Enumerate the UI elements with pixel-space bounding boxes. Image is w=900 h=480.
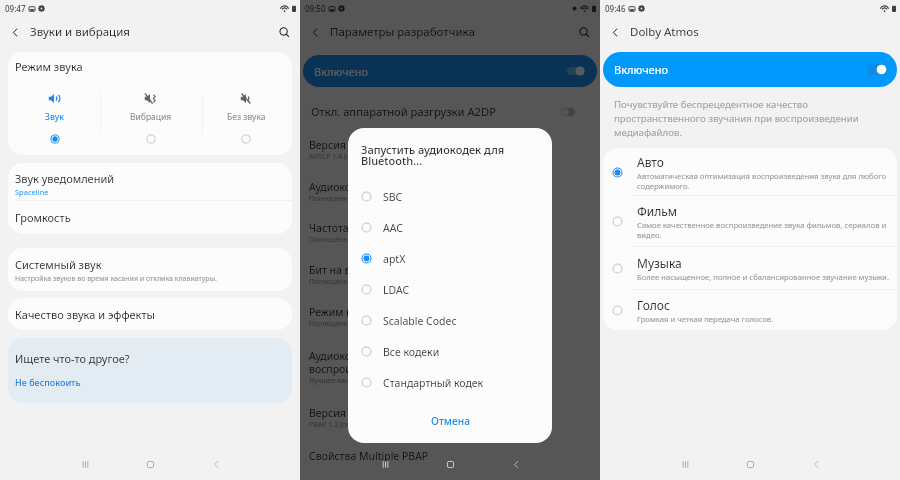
staticText: Запустить аудиокодек для Bluetooth… — [361, 142, 539, 168]
staticText: Звук уведомлений — [15, 171, 115, 186]
staticText: PBAP 1.2 (по умолчанию) — [309, 420, 394, 430]
button[interactable]: Качество звука и эффекты — [8, 298, 292, 330]
button[interactable]: Звук уведомлений — [8, 163, 292, 200]
button[interactable]: Включено — [603, 52, 897, 87]
staticText: Почувствуйте беспрецедентное качество пр… — [614, 98, 884, 139]
staticText: Откл. аппаратной разгрузки A2DP — [311, 104, 561, 119]
staticText: Громкая и четкая передача голосов. — [637, 314, 774, 324]
staticText: Свойства Multiple PBAP — [309, 449, 429, 463]
staticText: LDAC — [383, 283, 410, 297]
button[interactable]: Без звука — [200, 90, 292, 146]
staticText: Параметры разработчика — [330, 24, 475, 40]
staticText: Полноценный — [309, 235, 358, 245]
staticText: Полноценный — [309, 194, 358, 204]
staticText: Включено — [314, 64, 368, 79]
staticText: 09:50 — [305, 3, 326, 14]
staticText: Настройка звуков во время касания и откл… — [15, 274, 217, 284]
button[interactable]: Системный звук — [8, 248, 292, 291]
button[interactable]: Не беспокоить — [15, 376, 81, 388]
button[interactable]: Громкость — [8, 201, 292, 234]
button[interactable]: Back — [0, 16, 30, 48]
button[interactable]: SBC — [348, 181, 552, 212]
staticText: Громкость — [15, 210, 71, 225]
staticText: Версия Bluetooth AVRCP — [309, 138, 433, 152]
staticText: AAC — [383, 221, 403, 235]
staticText: Без звука — [227, 111, 266, 123]
staticText: Лучшее качество звука — [309, 376, 388, 386]
staticText: Режим каналов — [309, 305, 388, 319]
staticText: Более насыщенное, полное и сбалансирован… — [637, 272, 889, 282]
staticText: Системный звук — [15, 257, 102, 272]
staticText: Авто — [637, 154, 664, 170]
staticText: 09:47 — [5, 3, 26, 14]
staticText: Отмена — [431, 414, 470, 428]
staticText: Вибрация — [130, 111, 172, 123]
button[interactable]: Scalable Codec — [348, 305, 552, 336]
button[interactable]: Home — [735, 449, 765, 479]
button[interactable]: AAC — [348, 212, 552, 243]
button[interactable]: Back — [300, 16, 330, 48]
staticText: Не беспокоить — [15, 376, 81, 388]
button[interactable]: Отмена — [421, 410, 480, 432]
button[interactable]: Search — [568, 16, 600, 48]
staticText: Dolby Atmos — [630, 24, 699, 40]
button[interactable]: Back — [201, 449, 231, 479]
staticText: Включено — [614, 62, 668, 77]
staticText: Бит на выборку — [309, 263, 389, 277]
button[interactable]: aptX — [348, 243, 552, 274]
button[interactable]: Search — [268, 16, 300, 48]
staticText: Аудиокодек Bluetooth — [309, 180, 421, 194]
staticText: Scalable Codec — [383, 314, 457, 328]
button[interactable]: Home — [435, 449, 465, 479]
button[interactable]: Home — [135, 449, 165, 479]
button[interactable]: Back — [600, 16, 630, 48]
staticText: Музыка — [637, 255, 682, 271]
button[interactable]: Авто — [603, 148, 897, 196]
staticText: Ищете что-то другое? — [15, 351, 130, 366]
staticText: Все кодеки — [383, 345, 440, 359]
staticText: 09:46 — [605, 3, 626, 14]
button[interactable]: Back — [801, 449, 831, 479]
staticText: SBC — [383, 190, 403, 204]
staticText: Стандартный кодек — [383, 376, 484, 390]
staticText: Качество звука и эффекты — [15, 307, 155, 322]
staticText: Аудиокодек LDAC для воспроизведения — [309, 349, 420, 376]
button[interactable]: Музыка — [603, 247, 897, 290]
button[interactable]: Recent apps — [370, 449, 400, 479]
staticText: Самое качественное воспроизведение звука… — [637, 220, 891, 240]
staticText: Режим звука — [15, 59, 83, 74]
button[interactable]: Back — [501, 449, 531, 479]
staticText: Автоматическая оптимизация воспроизведен… — [637, 171, 891, 191]
button[interactable]: Звук — [8, 90, 101, 146]
button[interactable]: Стандартный кодек — [348, 367, 552, 398]
button[interactable]: Все кодеки — [348, 336, 552, 367]
button[interactable]: LDAC — [348, 274, 552, 305]
staticText: Звуки и вибрация — [30, 24, 130, 40]
staticText: Звук — [45, 111, 64, 123]
staticText: Полноценный — [309, 277, 358, 287]
staticText: Версия Bluetooth MAP — [309, 406, 423, 420]
staticText: Фильм — [637, 203, 678, 219]
button[interactable]: Вибрация — [101, 90, 200, 146]
staticText: Spaceline — [15, 187, 49, 197]
staticText: aptX — [383, 252, 406, 266]
staticText: Частота дискретизации — [309, 221, 429, 235]
button[interactable]: Recent apps — [70, 449, 100, 479]
button[interactable]: Голос — [603, 290, 897, 330]
button[interactable]: Включено — [303, 55, 597, 87]
button[interactable]: Recent apps — [670, 449, 700, 479]
staticText: AVRCP 1.4 (по умолчанию) — [309, 152, 398, 162]
button[interactable]: Фильм — [603, 196, 897, 247]
staticText: Голос — [637, 297, 670, 313]
staticText: Полноценный — [309, 319, 358, 329]
